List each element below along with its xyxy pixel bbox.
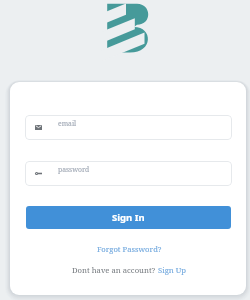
button[interactable]: Email (25, 115, 232, 140)
button[interactable]: Sign Up (158, 265, 186, 275)
other: Password (35, 172, 42, 175)
other: App logo (106, 3, 152, 54)
staticText: email (58, 119, 77, 128)
staticText: Dont have an account? (72, 265, 158, 275)
staticText: Sign In (112, 211, 145, 224)
button[interactable]: Sign In (26, 206, 231, 229)
button[interactable]: Forgot Password? (97, 244, 162, 254)
other: Email (35, 125, 42, 130)
staticText: password (58, 165, 90, 174)
button[interactable]: Password (25, 161, 232, 186)
